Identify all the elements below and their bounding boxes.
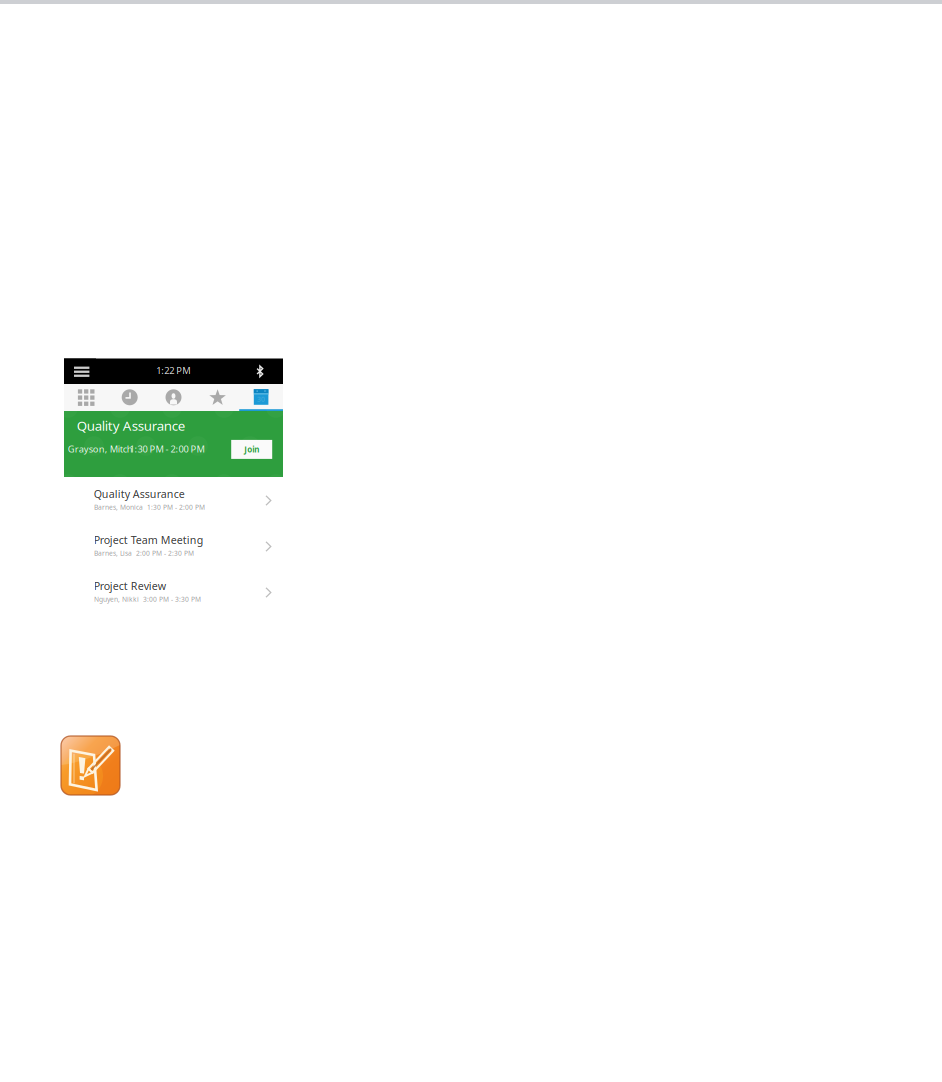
staticText: Project Team Meeting	[94, 533, 204, 547]
button[interactable]: Contacts	[152, 384, 195, 411]
button[interactable]: Quality Assurance	[64, 477, 283, 523]
staticText: 1:30 PM - 2:00 PM	[129, 443, 204, 455]
staticText: Barnes, Monica 1:30 PM - 2:00 PM	[94, 503, 205, 512]
staticText: Join	[244, 444, 259, 455]
button[interactable]: Apps	[64, 384, 108, 411]
staticText: Nguyen, Nikki 3:00 PM - 3:30 PM	[94, 595, 201, 604]
staticText: 30	[257, 395, 265, 404]
staticText: Project Review	[94, 579, 166, 593]
staticText: 1:22 PM	[156, 364, 190, 377]
button[interactable]: Project Review	[64, 569, 283, 615]
staticText: Barnes, Lisa 2:00 PM - 2:30 PM	[94, 549, 194, 558]
button[interactable]: Project Team Meeting	[64, 523, 283, 569]
button[interactable]: Join	[231, 440, 272, 459]
button[interactable]: Calendar	[239, 384, 283, 411]
button[interactable]: Favorites	[195, 384, 239, 411]
button[interactable]: Recent	[108, 384, 152, 411]
button[interactable]: Menu	[64, 358, 96, 384]
staticText: Quality Assurance	[77, 417, 186, 434]
staticText: Grayson, Mitch	[68, 443, 133, 455]
staticText: Quality Assurance	[94, 487, 185, 501]
